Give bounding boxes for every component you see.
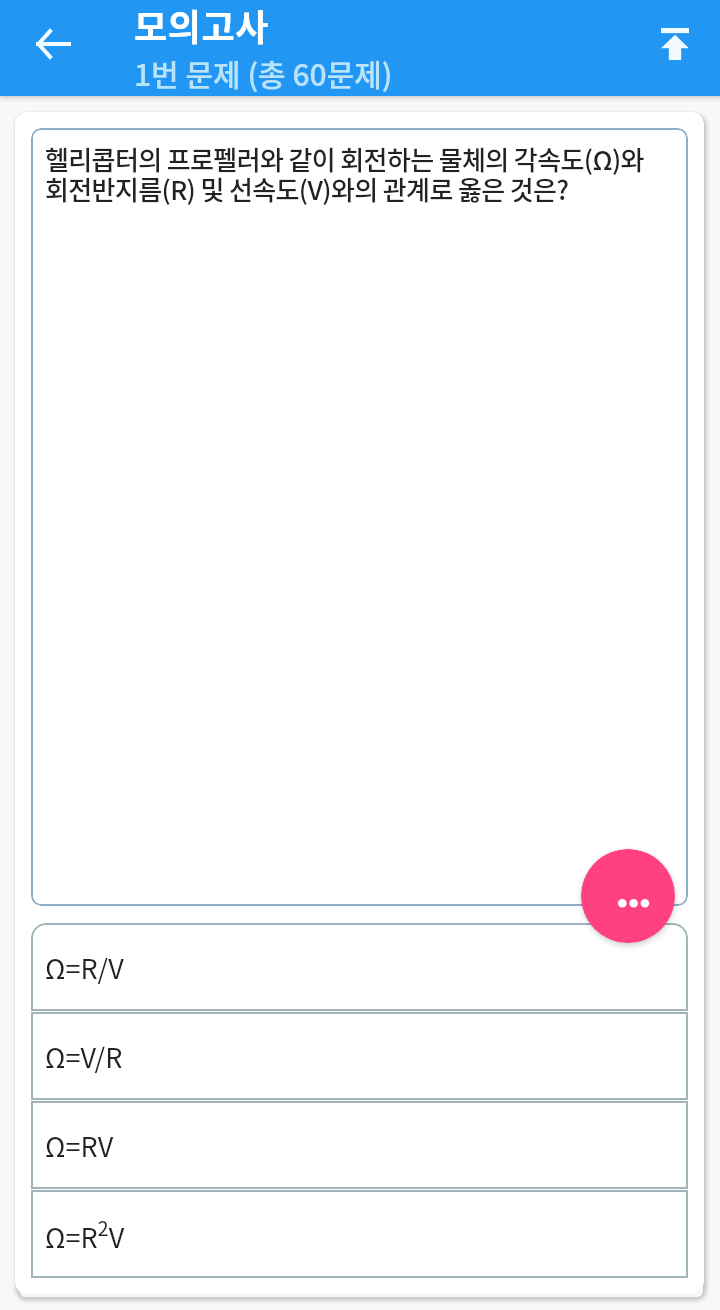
staticText: Ω=R/V [45, 948, 124, 987]
staticText: Ω=R2V [45, 1213, 125, 1256]
staticText: Ω=RV [45, 1126, 114, 1165]
button[interactable]: Back [23, 14, 83, 74]
button[interactable]: Ω=V/R [31, 1012, 688, 1100]
button[interactable]: Submit answers [645, 14, 705, 74]
button[interactable]: Ω=RV [31, 1101, 688, 1189]
button[interactable]: More options [581, 849, 675, 943]
staticText: 헬리콥터의 프로펠러와 같이 회전하는 물체의 각속도(Ω)와 회전반지름(R)… [45, 140, 644, 208]
button[interactable]: Ω=R2V [31, 1190, 688, 1278]
staticText: 1번 문제 (총 60문제) [134, 51, 393, 94]
button[interactable]: Ω=R/V [31, 923, 688, 1011]
staticText: Ω=V/R [45, 1037, 123, 1076]
staticText: 모의고사 [134, 0, 269, 51]
